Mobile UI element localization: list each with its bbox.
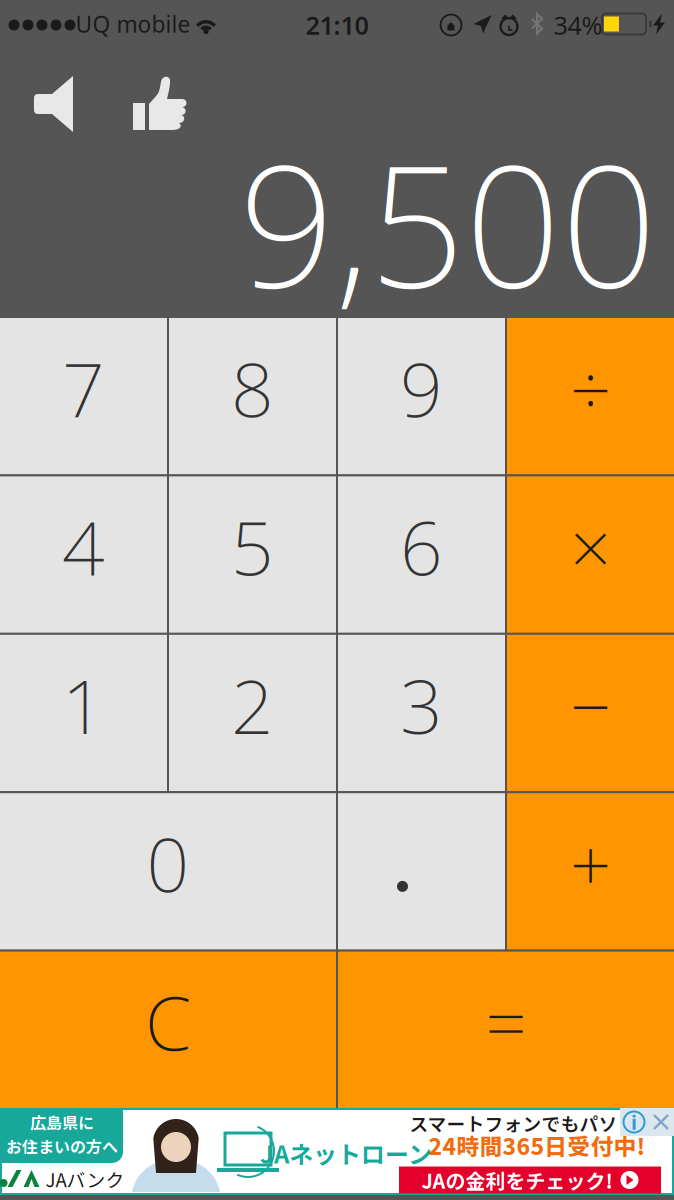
button[interactable]: ÷ (507, 318, 674, 474)
staticText: 4 (62, 497, 105, 596)
button[interactable]: Like (128, 74, 192, 134)
staticText: 2 (231, 655, 274, 755)
staticText: 8 (231, 339, 274, 438)
button[interactable]: × (507, 476, 674, 633)
staticText: 9 (400, 339, 443, 438)
staticText: + (570, 816, 611, 911)
staticText: 5 (231, 497, 274, 596)
button[interactable] (338, 793, 505, 950)
staticText: JAバンク (45, 1165, 124, 1192)
staticText: スマートフォンでもパソコ (409, 1109, 636, 1136)
button[interactable]: = (338, 952, 674, 1108)
button[interactable]: JA Net Loan advertisement (0, 1108, 674, 1195)
staticText: = (485, 974, 526, 1070)
button[interactable]: + (507, 793, 674, 950)
staticText: 広島県に (30, 1110, 94, 1133)
button[interactable]: 4 (0, 476, 167, 633)
button[interactable]: 3 (338, 635, 505, 791)
staticText: − (570, 657, 611, 753)
button[interactable]: 2 (169, 635, 336, 791)
staticText: 6 (400, 497, 443, 596)
button[interactable]: 9 (338, 318, 505, 474)
staticText: 21:10 (305, 8, 368, 42)
button[interactable]: 1 (0, 635, 167, 791)
button[interactable]: 5 (169, 476, 336, 633)
staticText: 9,500 (239, 110, 657, 334)
button[interactable]: 6 (338, 476, 505, 633)
staticText: JAの金利をチェック! (421, 1165, 612, 1194)
button[interactable]: − (507, 635, 674, 791)
staticText: 3 (400, 655, 443, 755)
staticText: C (145, 972, 191, 1071)
button[interactable]: Mute (22, 74, 86, 134)
button[interactable]: 8 (169, 318, 336, 474)
staticText: 1 (62, 655, 105, 755)
button[interactable]: 7 (0, 318, 167, 474)
staticText: i (631, 1109, 637, 1135)
staticText: 7 (62, 339, 105, 438)
staticText: 0 (146, 814, 189, 913)
staticText: × (570, 499, 611, 594)
staticText: お住まいの方へ (6, 1134, 118, 1158)
button[interactable]: 0 (0, 793, 336, 950)
staticText: 24時間365日受付中! (428, 1129, 645, 1161)
staticText: 34% (553, 8, 602, 42)
staticText: UQ mobile (75, 9, 190, 39)
staticText: JAネットローン (260, 1136, 432, 1170)
staticText: ÷ (570, 340, 611, 436)
button[interactable]: C (0, 952, 336, 1108)
